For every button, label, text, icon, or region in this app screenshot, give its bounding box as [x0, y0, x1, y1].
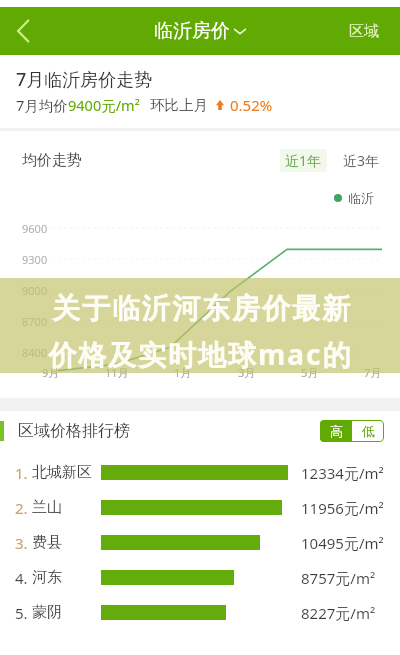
- button[interactable]: 临沂房价: [154, 19, 246, 43]
- staticText: 3.: [15, 533, 28, 553]
- staticText: 3月: [238, 365, 256, 380]
- staticText: 9600: [22, 221, 48, 236]
- staticText: 7月均价: [16, 95, 68, 115]
- button[interactable]: 区域: [339, 22, 400, 41]
- staticText: 9000: [22, 283, 48, 298]
- staticText: 5月: [301, 365, 319, 380]
- staticText: 0.52%: [230, 95, 273, 115]
- button[interactable]: 5.: [0, 595, 400, 630]
- staticText: 均价走势: [22, 151, 82, 170]
- staticText: 7月: [364, 365, 382, 380]
- staticText: 临沂: [348, 190, 374, 206]
- staticText: 环比上月: [150, 96, 208, 114]
- button[interactable]: 2.: [0, 490, 400, 525]
- staticText: 近1年: [285, 151, 322, 170]
- staticText: 蒙阴: [32, 603, 62, 622]
- staticText: 9300: [22, 252, 48, 267]
- staticText: 8400: [22, 345, 48, 360]
- staticText: 11956元/m²: [301, 498, 384, 518]
- staticText: 5.: [15, 603, 28, 623]
- staticText: 区域价格排行榜: [18, 421, 130, 441]
- button[interactable]: 3.: [0, 525, 400, 560]
- button[interactable]: 高: [320, 420, 352, 442]
- staticText: 12334元/m²: [301, 463, 384, 483]
- staticText: 北城新区: [32, 463, 92, 482]
- staticText: 4.: [15, 568, 28, 588]
- button[interactable]: 1.: [0, 455, 400, 490]
- staticText: 11月: [105, 365, 129, 380]
- button[interactable]: 近1年: [280, 149, 327, 172]
- staticText: 2.: [15, 498, 28, 518]
- button[interactable]: Back: [0, 9, 44, 53]
- staticText: 费县: [32, 533, 62, 552]
- staticText: 9400元/m²: [68, 95, 140, 115]
- staticText: 河东: [32, 568, 62, 587]
- button[interactable]: 4.: [0, 560, 400, 595]
- staticText: 7月临沂房价走势: [16, 67, 153, 92]
- staticText: 8700: [22, 314, 48, 329]
- staticText: 8757元/m²: [301, 568, 376, 588]
- staticText: 1月: [174, 365, 192, 380]
- staticText: 兰山: [32, 498, 62, 517]
- staticText: 价格及实时地球mac的: [48, 335, 353, 373]
- staticText: 临沂房价: [154, 19, 230, 43]
- staticText: 10495元/m²: [301, 533, 384, 553]
- staticText: 高: [330, 423, 343, 439]
- staticText: 区域: [349, 22, 379, 41]
- button[interactable]: 近3年: [338, 149, 385, 172]
- staticText: 1.: [15, 463, 28, 483]
- staticText: 8227元/m²: [301, 603, 376, 623]
- staticText: 近3年: [343, 151, 380, 170]
- staticText: 9月: [42, 365, 60, 380]
- staticText: 低: [362, 423, 375, 439]
- staticText: 关于临沂河东房价最新: [51, 291, 351, 326]
- button[interactable]: 低: [352, 420, 384, 442]
